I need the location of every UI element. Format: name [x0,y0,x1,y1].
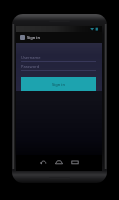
button[interactable]: Username [21,55,96,62]
staticText: Sign in [27,35,40,40]
button[interactable]: Sign in [21,77,96,91]
button[interactable]: Back [38,157,48,167]
staticText: Sign in [52,82,65,87]
button[interactable]: Password [21,64,96,71]
staticText: Password [21,64,40,69]
button[interactable]: Sign in [16,32,102,43]
button[interactable]: Home [54,157,64,167]
staticText: Username [21,55,41,60]
button[interactable]: Recents [70,157,80,167]
